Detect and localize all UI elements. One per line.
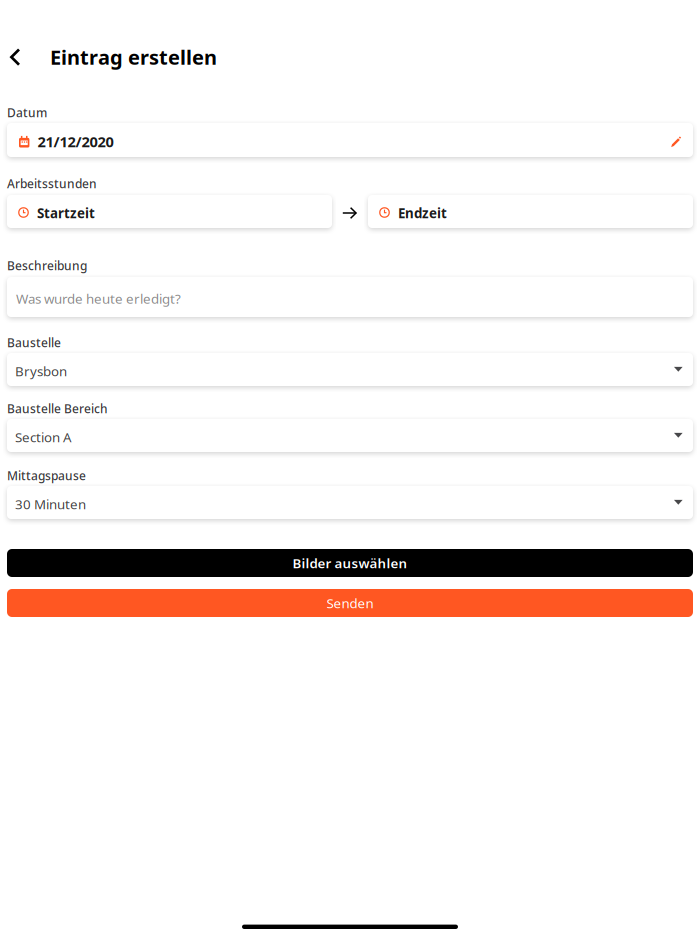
staticText: Baustelle Bereich [7,400,108,416]
staticText: Was wurde heute erledigt? [16,290,181,307]
staticText: 21/12/2020 [37,132,113,151]
staticText: Brysbon [15,362,67,380]
staticText: Mittagspause [7,467,86,483]
staticText: Bilder auswählen [292,554,407,572]
button[interactable]: Senden [7,589,693,617]
button[interactable]: Section A [7,419,693,452]
button[interactable]: Back [7,35,41,79]
button[interactable]: Startzeit [7,195,332,228]
button[interactable]: 21/12/2020 [7,123,693,157]
staticText: Datum [7,104,47,120]
button[interactable]: Bilder auswählen [7,549,693,577]
button[interactable]: 30 Minuten [7,486,693,519]
staticText: Senden [326,594,373,612]
staticText: Arbeitsstunden [7,175,97,191]
button[interactable]: Endzeit [368,195,693,228]
staticText: Startzeit [37,204,95,222]
staticText: Endzeit [398,204,447,222]
button[interactable]: Was wurde heute erledigt? [7,277,693,317]
button[interactable]: Brysbon [7,353,693,386]
staticText: Section A [15,428,72,446]
staticText: Eintrag erstellen [50,44,217,70]
staticText: Beschreibung [7,257,87,273]
staticText: Baustelle [7,334,61,350]
staticText: 30 Minuten [15,495,86,513]
